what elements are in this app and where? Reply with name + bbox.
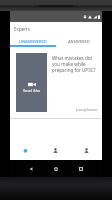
staticText: ANSWERED (68, 39, 90, 44)
staticText: Experts (14, 26, 30, 32)
button[interactable]: UNANSWERED (10, 36, 56, 47)
button[interactable]: Recents (76, 164, 86, 174)
button[interactable]: Back (26, 164, 36, 174)
button[interactable]: Home (10, 141, 40, 160)
button[interactable]: Profile (71, 141, 102, 160)
staticText: Record Video (23, 89, 41, 93)
button[interactable]: Record Video (10, 47, 102, 119)
button[interactable]: Questions (40, 141, 71, 160)
staticText: UNANSWERED (19, 39, 47, 44)
button[interactable]: Home (51, 164, 61, 174)
button[interactable]: ANSWERED (56, 36, 102, 47)
staticText: What mistakes did you make while prepari… (52, 55, 98, 73)
staticText: prompt banner (76, 108, 98, 112)
